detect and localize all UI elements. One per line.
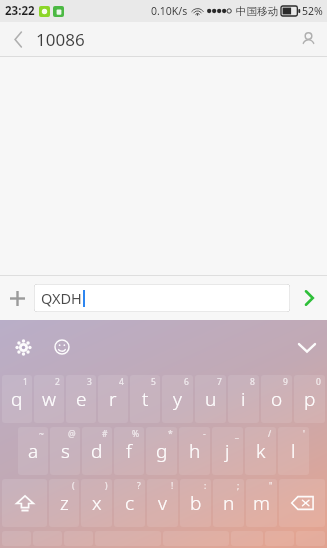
button[interactable]: q <box>2 375 32 423</box>
staticText: h <box>189 438 201 464</box>
staticText: e <box>76 386 87 412</box>
button[interactable]: z <box>49 479 79 527</box>
staticText: l <box>291 438 296 464</box>
staticText: f <box>126 438 132 464</box>
button[interactable]: Send <box>290 276 327 320</box>
staticText: ! <box>171 480 174 492</box>
button[interactable]: Contact info <box>289 22 327 56</box>
staticText: v <box>158 490 167 516</box>
staticText: o <box>271 386 283 412</box>
button[interactable]: m <box>246 479 277 527</box>
button[interactable]: c <box>114 479 145 527</box>
staticText: 52% <box>302 4 323 18</box>
button[interactable]: QXDH <box>34 284 290 312</box>
staticText: 中国移动 <box>236 5 278 18</box>
staticText: 6 <box>184 376 189 388</box>
staticText: t <box>142 386 149 412</box>
staticText: 7 <box>217 376 222 388</box>
staticText: 23:22 <box>5 3 35 19</box>
button[interactable]: l <box>278 427 309 475</box>
staticText: 9 <box>283 376 288 388</box>
button[interactable]: n <box>213 479 244 527</box>
staticText: ' <box>303 428 305 440</box>
staticText: ) <box>105 480 108 492</box>
button[interactable]: Backspace <box>279 479 325 527</box>
staticText: # <box>102 428 108 440</box>
button[interactable]: h <box>179 427 210 475</box>
staticText: w <box>42 386 56 412</box>
button[interactable]: v <box>147 479 178 527</box>
staticText: 10086 <box>36 28 85 51</box>
button[interactable]: u <box>195 375 226 423</box>
staticText: - <box>203 428 206 440</box>
staticText: 3 <box>87 376 92 388</box>
button[interactable]: Back <box>0 22 36 56</box>
button[interactable]: Keyboard settings <box>6 330 40 364</box>
button[interactable]: Hide keyboard <box>287 327 327 367</box>
staticText: @ <box>68 428 76 440</box>
staticText: 0 <box>316 376 321 388</box>
staticText: u <box>205 386 217 412</box>
staticText: QXDH <box>41 288 82 308</box>
button[interactable]: Add attachment <box>0 276 34 320</box>
staticText: c <box>125 490 135 516</box>
staticText: 0.10K/s <box>151 4 188 18</box>
staticText: p <box>304 386 316 412</box>
staticText: 1 <box>23 376 28 388</box>
staticText: ? <box>137 480 141 492</box>
staticText: y <box>173 386 182 412</box>
staticText: m <box>253 490 270 516</box>
staticText: z <box>60 490 69 516</box>
staticText: b <box>190 490 202 516</box>
staticText: ( <box>72 480 75 492</box>
button[interactable]: i <box>228 375 259 423</box>
button[interactable]: w <box>34 375 64 423</box>
button[interactable]: p <box>294 375 325 423</box>
button[interactable]: s <box>50 427 80 475</box>
button[interactable]: o <box>261 375 292 423</box>
button[interactable]: r <box>98 375 128 423</box>
staticText: n <box>223 490 235 516</box>
staticText: s <box>61 438 70 464</box>
staticText: : <box>204 480 207 492</box>
button[interactable]: g <box>146 427 177 475</box>
button[interactable]: f <box>114 427 144 475</box>
staticText: i <box>241 386 246 412</box>
staticText: % <box>132 428 140 440</box>
staticText: ; <box>237 480 240 492</box>
staticText: ~ <box>39 428 44 440</box>
button[interactable]: d <box>82 427 112 475</box>
staticText: " <box>269 480 273 492</box>
staticText: * <box>168 428 173 440</box>
staticText: g <box>156 438 168 464</box>
button[interactable]: 10086 <box>36 22 85 56</box>
button[interactable]: y <box>162 375 193 423</box>
staticText: d <box>91 438 103 464</box>
button[interactable]: x <box>81 479 112 527</box>
button[interactable]: a <box>18 427 48 475</box>
staticText: r <box>109 386 117 412</box>
button[interactable]: Shift <box>2 479 47 527</box>
staticText: q <box>11 386 23 412</box>
button[interactable]: e <box>66 375 96 423</box>
button[interactable]: j <box>212 427 243 475</box>
staticText: 5 <box>151 376 156 388</box>
button[interactable]: Emoji <box>47 332 77 362</box>
staticText: j <box>225 438 230 464</box>
staticText: 4 <box>119 376 124 388</box>
button[interactable]: b <box>180 479 211 527</box>
staticText: 8 <box>250 376 255 388</box>
button[interactable]: k <box>245 427 276 475</box>
button[interactable]: t <box>130 375 160 423</box>
staticText: a <box>28 438 39 464</box>
staticText: / <box>268 428 272 440</box>
staticText: 2 <box>55 376 60 388</box>
